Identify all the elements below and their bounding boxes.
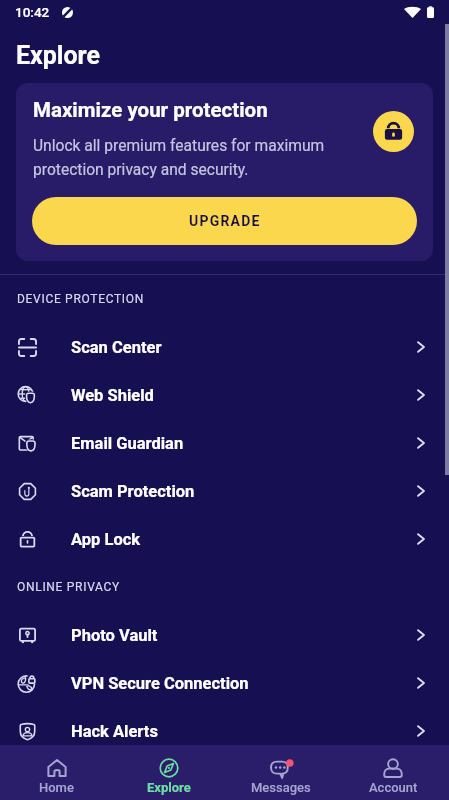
button[interactable]: Messages [225, 745, 337, 800]
staticText: ONLINE PRIVACY [17, 580, 120, 594]
staticText: Home [39, 780, 74, 795]
other: Battery [427, 6, 434, 18]
staticText: Scam Protection [71, 482, 195, 501]
staticText: Maximize your protection [33, 98, 268, 122]
staticText: Email Guardian [71, 434, 184, 453]
staticText: DEVICE PROTECTION [17, 292, 145, 306]
staticText: VPN Secure Connection [71, 674, 249, 693]
staticText: Photo Vault [71, 626, 158, 645]
staticText: UPGRADE [189, 213, 261, 229]
button[interactable]: Scan Center [0, 323, 449, 371]
button[interactable]: Email Guardian [0, 419, 449, 467]
other: Do not disturb [62, 7, 73, 18]
staticText: Explore [16, 41, 100, 70]
button[interactable]: Scam Protection [0, 467, 449, 515]
button[interactable]: Web Shield [0, 371, 449, 419]
staticText: Messages [251, 780, 311, 795]
staticText: Scan Center [71, 338, 162, 357]
button[interactable]: VPN Secure Connection [0, 659, 449, 707]
other: Wi-Fi [404, 6, 421, 18]
button[interactable]: Home [0, 745, 113, 800]
staticText: Unlock all premium features for maximum … [33, 137, 325, 179]
button[interactable]: Photo Vault [0, 611, 449, 659]
staticText: Explore [147, 780, 191, 795]
staticText: Web Shield [71, 386, 154, 405]
button[interactable]: App Lock [0, 515, 449, 563]
staticText: Account [369, 780, 418, 795]
button[interactable]: UPGRADE [32, 197, 417, 245]
button[interactable]: Premium lock [373, 111, 414, 152]
staticText: Hack Alerts [71, 722, 158, 741]
button[interactable]: Explore [113, 745, 225, 800]
button[interactable]: Hack Alerts [0, 707, 449, 755]
button[interactable]: Account [337, 745, 449, 800]
staticText: 10:42 [15, 4, 50, 20]
staticText: App Lock [71, 530, 141, 549]
